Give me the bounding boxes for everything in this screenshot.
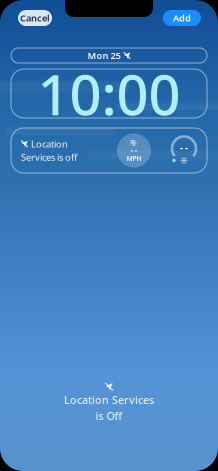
staticText: 10:00 bbox=[37, 56, 180, 131]
staticText: Services is off bbox=[21, 151, 77, 163]
button[interactable]: Location bbox=[11, 124, 207, 173]
staticText: is Off bbox=[95, 409, 122, 423]
staticText: Location Services bbox=[64, 393, 154, 407]
button[interactable]: Cancel bbox=[18, 10, 52, 26]
button[interactable]: Mon 25 bbox=[11, 48, 207, 63]
staticText: Location bbox=[31, 138, 68, 150]
staticText: Cancel bbox=[20, 12, 50, 24]
staticText: Add bbox=[173, 12, 191, 24]
button[interactable]: 10:00 bbox=[11, 69, 207, 118]
button[interactable]: Add bbox=[163, 10, 201, 26]
staticText: Mon 25 bbox=[87, 49, 120, 62]
staticText: MPH bbox=[126, 154, 141, 163]
